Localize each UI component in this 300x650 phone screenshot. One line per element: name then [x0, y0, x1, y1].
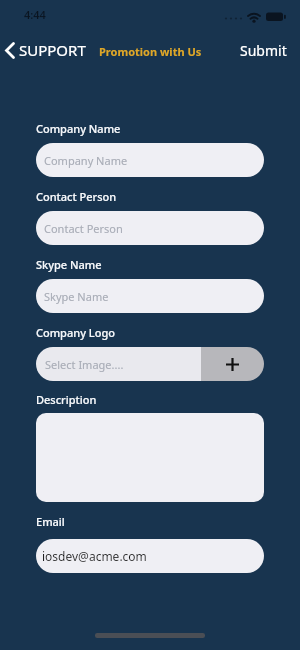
button[interactable]: iosdev@acme.com — [36, 539, 264, 573]
staticText: Email — [36, 514, 65, 529]
button[interactable] — [36, 413, 264, 502]
staticText: Company Name — [36, 121, 121, 136]
staticText: Contact Person — [36, 189, 117, 204]
staticText: iosdev@acme.com — [42, 548, 147, 564]
staticText: 4:44 — [24, 7, 46, 22]
staticText: Select Image.... — [45, 357, 124, 372]
staticText: Company Name — [44, 153, 128, 168]
button[interactable]: Select Image.... — [36, 347, 201, 381]
staticText: SUPPORT — [19, 40, 86, 60]
button[interactable]: Contact Person — [36, 211, 264, 245]
button[interactable]: Submit — [240, 41, 287, 60]
button[interactable]: Company Name — [36, 143, 264, 177]
staticText: Contact Person — [44, 221, 123, 236]
staticText: Skype Name — [44, 289, 109, 304]
button[interactable] — [201, 347, 264, 381]
staticText: Skype Name — [36, 257, 102, 272]
staticText: Company Logo — [36, 325, 115, 340]
button[interactable]: SUPPORT — [4, 40, 86, 60]
staticText: Description — [36, 392, 97, 407]
staticText: Promotion with Us — [99, 44, 202, 59]
button[interactable]: Skype Name — [36, 279, 264, 313]
